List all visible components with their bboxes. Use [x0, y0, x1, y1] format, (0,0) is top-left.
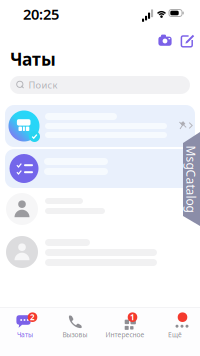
button[interactable]: [0, 234, 200, 276]
button[interactable]: [5, 149, 195, 188]
button[interactable]: 2: [0, 308, 50, 356]
button[interactable]: Поиск: [10, 76, 190, 94]
staticText: 20:25: [23, 4, 59, 24]
staticText: Чаты: [10, 47, 56, 70]
button[interactable]: [5, 105, 195, 147]
staticText: MsgCatalog: [157, 171, 200, 187]
staticText: Вызовы: [62, 330, 87, 339]
button[interactable]: Вызовы: [50, 308, 100, 356]
button[interactable]: 1: [100, 308, 150, 356]
button[interactable]: Ещё: [150, 308, 200, 356]
button[interactable]: [0, 192, 200, 232]
staticText: Чаты: [17, 330, 33, 339]
staticText: Ещё: [168, 330, 182, 339]
staticText: Интересное: [105, 330, 144, 339]
staticText: 2: [30, 312, 35, 322]
button[interactable]: Camera: [155, 33, 175, 49]
button[interactable]: MsgCatalog: [182, 132, 200, 226]
staticText: 1: [130, 312, 135, 322]
staticText: Поиск: [28, 79, 57, 91]
button[interactable]: New message: [178, 33, 198, 49]
